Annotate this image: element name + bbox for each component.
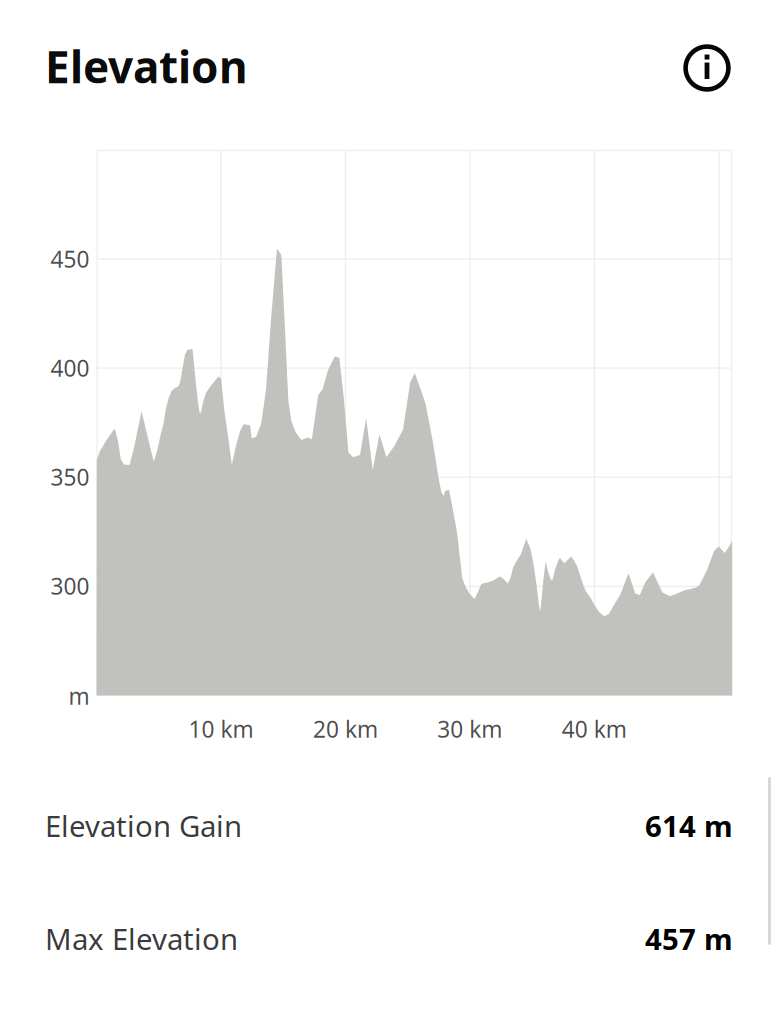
staticText: 350 xyxy=(50,462,89,492)
staticText: 614 m xyxy=(645,806,733,845)
staticText: Max Elevation xyxy=(45,919,238,958)
staticText: Elevation xyxy=(45,37,248,95)
button[interactable]: Max Elevation xyxy=(45,882,733,995)
staticText: m xyxy=(68,681,89,711)
staticText: 40 km xyxy=(562,714,627,744)
staticText: 300 xyxy=(50,571,89,601)
staticText: 457 m xyxy=(645,919,733,958)
staticText: Elevation Gain xyxy=(45,806,242,845)
button[interactable]: Elevation Gain xyxy=(45,769,733,882)
staticText: 30 km xyxy=(437,714,502,744)
staticText: 400 xyxy=(50,353,89,383)
button[interactable]: Info xyxy=(681,42,733,94)
staticText: 10 km xyxy=(188,714,253,744)
staticText: 20 km xyxy=(313,714,378,744)
staticText: 450 xyxy=(50,244,89,274)
